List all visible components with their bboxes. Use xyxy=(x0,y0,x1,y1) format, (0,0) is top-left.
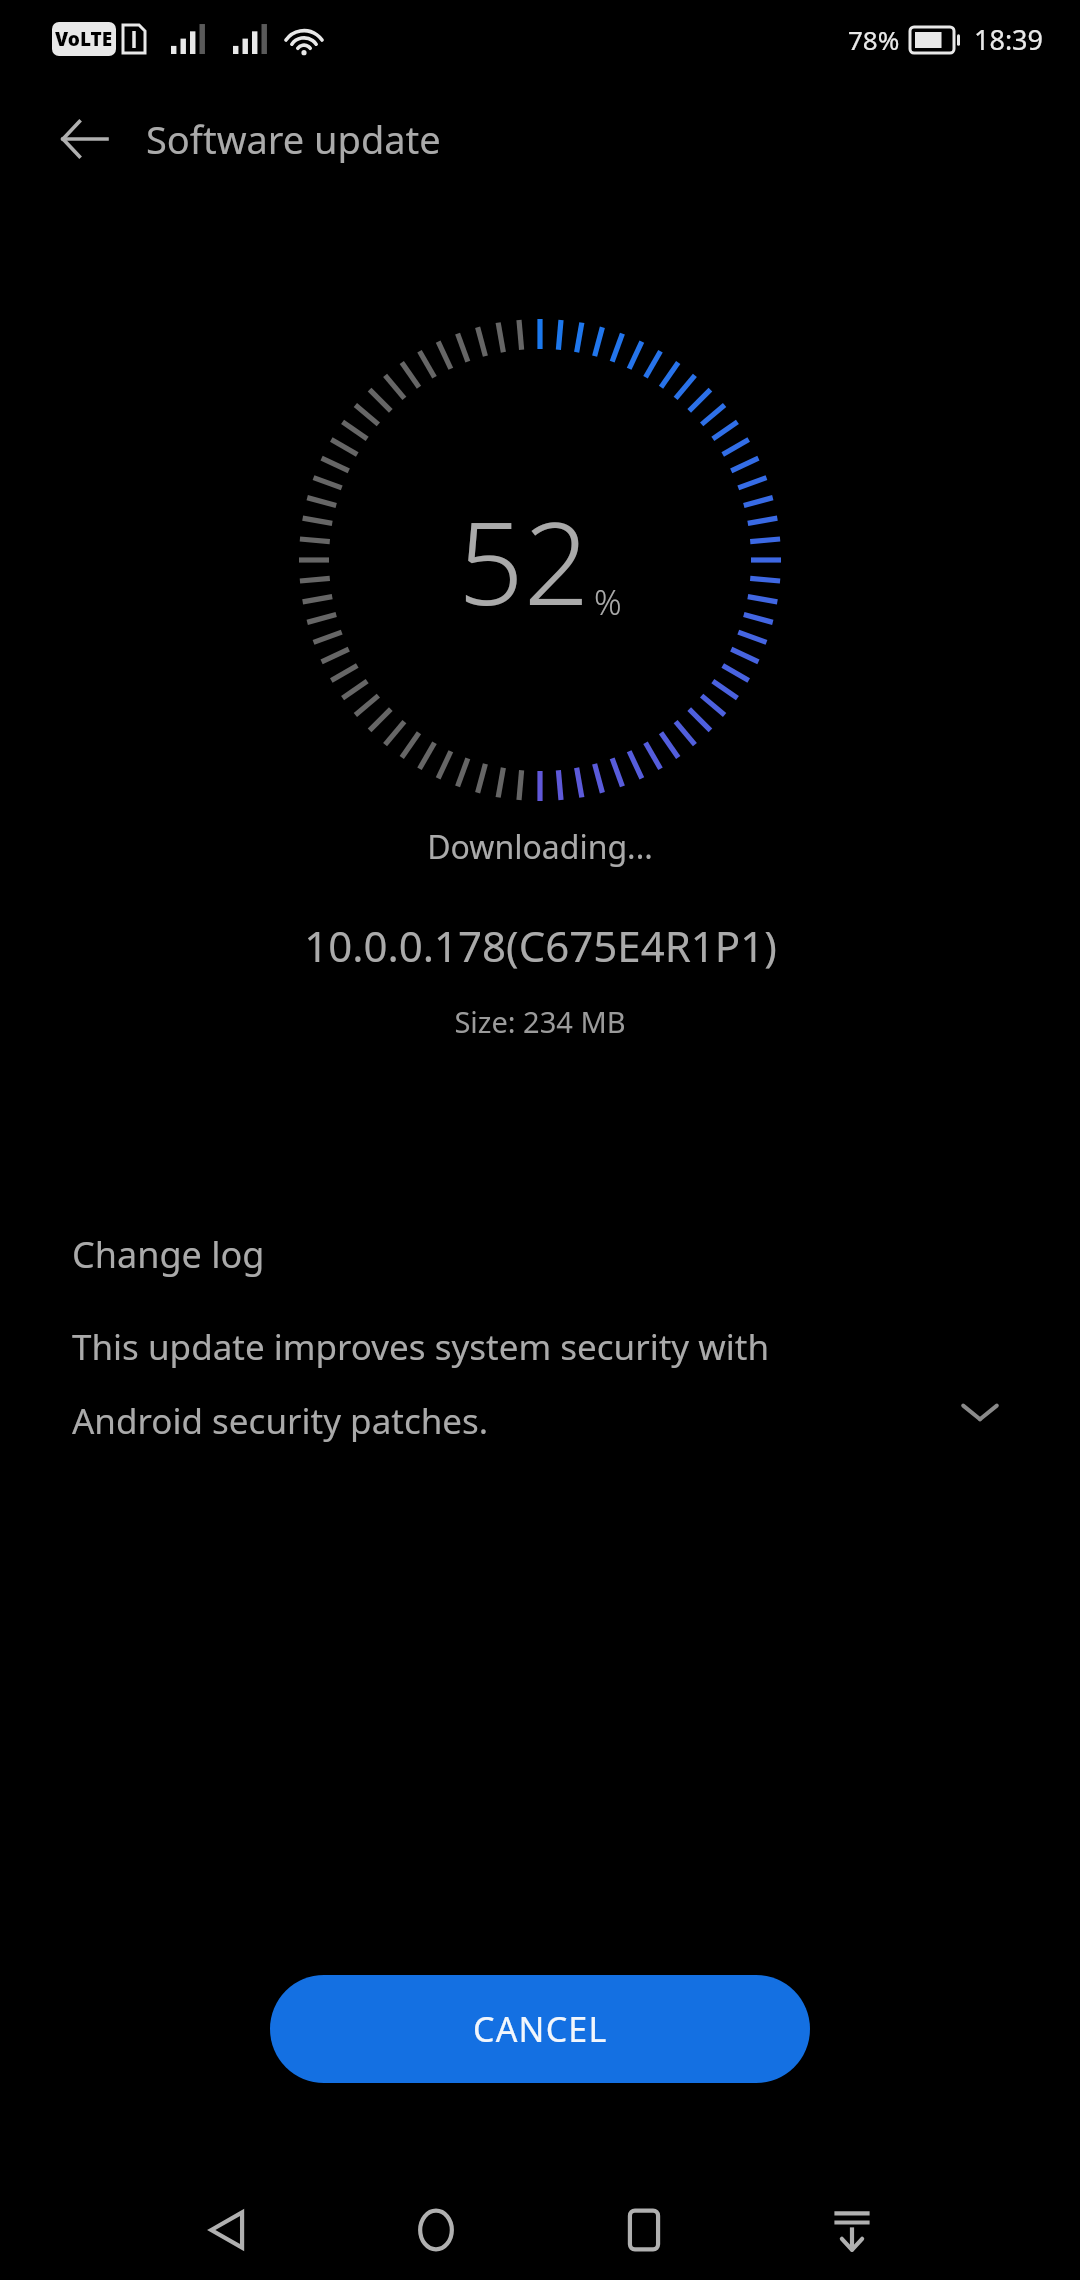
staticText: Downloading... xyxy=(427,825,653,869)
staticText: % xyxy=(594,579,622,625)
staticText: 10.0.0.178(C675E4R1P1) xyxy=(304,917,777,974)
staticText: Software update xyxy=(146,113,441,165)
staticText: CANCEL xyxy=(473,2006,608,2052)
button[interactable]: Hide navigation bar xyxy=(804,2180,900,2280)
button[interactable]: Home xyxy=(388,2180,484,2280)
staticText: 78% xyxy=(848,22,900,57)
button[interactable]: Back xyxy=(52,107,116,171)
button[interactable]: CANCEL xyxy=(270,1975,810,2083)
staticText: 52 xyxy=(458,482,590,639)
button[interactable]: Back xyxy=(180,2180,276,2280)
staticText: 18:39 xyxy=(974,21,1044,58)
staticText: Size: 234 MB xyxy=(454,1002,626,1041)
button[interactable]: Expand change log xyxy=(952,1384,1008,1440)
button[interactable]: Change log xyxy=(0,1230,1080,1444)
button[interactable]: Recents xyxy=(596,2180,692,2280)
staticText: Change log xyxy=(72,1230,265,1279)
staticText: VoLTE xyxy=(55,26,113,52)
staticText: This update improves system security wit… xyxy=(72,1323,770,1444)
